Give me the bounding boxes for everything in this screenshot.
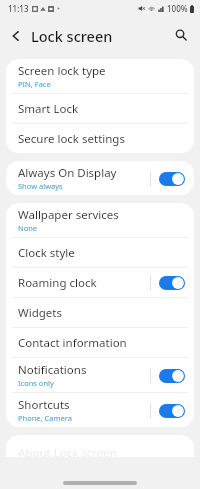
button[interactable]: Smart Lock: [6, 94, 194, 123]
staticText: Screen lock type: [18, 63, 106, 79]
button[interactable]: Back: [0, 20, 31, 51]
staticText: Smart Lock: [18, 101, 79, 117]
staticText: Show always: [18, 181, 63, 191]
staticText: Notifications: [18, 362, 87, 378]
button[interactable]: Shortcuts: [6, 393, 194, 427]
staticText: Phone, Camera: [18, 413, 72, 423]
button[interactable]: Roaming clock toggle: [158, 273, 186, 292]
button[interactable]: Widgets: [6, 298, 194, 327]
button[interactable]: Secure lock settings: [6, 124, 194, 153]
button[interactable]: Search: [166, 20, 196, 50]
button[interactable]: Roaming clock: [6, 268, 194, 297]
button[interactable]: Notifications: [6, 358, 194, 392]
staticText: Roaming clock: [18, 275, 97, 291]
staticText: Clock style: [18, 245, 75, 261]
button[interactable]: About Lock screen: [6, 435, 194, 457]
button[interactable]: Always On Display: [6, 161, 194, 195]
staticText: PIN, Face: [18, 79, 51, 89]
staticText: 100%: [167, 3, 188, 14]
staticText: Icons only: [18, 378, 54, 388]
staticText: Wallpaper services: [18, 207, 119, 223]
button[interactable]: Shortcuts toggle: [158, 401, 186, 420]
button[interactable]: Notifications toggle: [158, 366, 186, 385]
staticText: Secure lock settings: [18, 131, 125, 147]
button[interactable]: Clock style: [6, 238, 194, 267]
staticText: Contact information: [18, 335, 127, 351]
staticText: About Lock screen: [18, 445, 117, 457]
button[interactable]: Always On Display toggle: [158, 169, 186, 188]
button[interactable]: Wallpaper services: [6, 203, 194, 237]
staticText: Always On Display: [18, 165, 117, 181]
staticText: Widgets: [18, 305, 62, 321]
staticText: Lock screen: [31, 26, 113, 46]
staticText: Shortcuts: [18, 397, 70, 413]
staticText: None: [18, 223, 38, 233]
button[interactable]: Contact information: [6, 328, 194, 357]
staticText: 11:13: [8, 3, 29, 14]
button[interactable]: Screen lock type: [6, 59, 194, 93]
